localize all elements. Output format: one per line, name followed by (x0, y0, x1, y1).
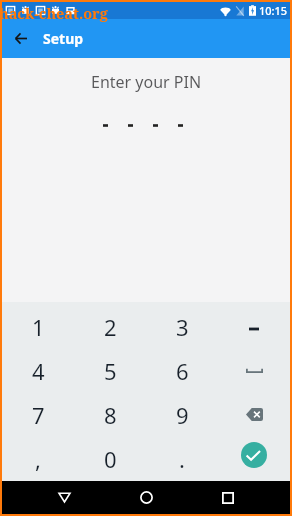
staticText: 3 (176, 312, 189, 342)
staticText: 4 (32, 356, 45, 386)
staticText: 0 (104, 444, 117, 474)
staticText: . (179, 444, 185, 474)
staticText: 5 (104, 356, 117, 386)
button[interactable]: 1 (2, 305, 74, 349)
button[interactable]: 5 (74, 349, 146, 393)
staticText: 7 (32, 400, 45, 430)
button[interactable]: 6 (146, 349, 218, 393)
button[interactable]: 8 (74, 393, 146, 437)
button[interactable]: 3 (146, 305, 218, 349)
button[interactable]: 9 (146, 393, 218, 437)
staticText: 10:15 (259, 3, 288, 18)
staticText: 9 (176, 400, 189, 430)
button[interactable]: Recent apps (208, 481, 248, 514)
button[interactable]: . (146, 437, 218, 481)
button[interactable]: , (2, 437, 74, 481)
button[interactable]: Home (126, 481, 166, 514)
staticText: 1 (32, 312, 45, 342)
button[interactable]: 0 (74, 437, 146, 481)
button[interactable]: 4 (2, 349, 74, 393)
staticText: 8 (104, 400, 117, 430)
staticText: 2 (104, 312, 117, 342)
button[interactable]: Backspace (218, 393, 290, 437)
button[interactable]: 7 (2, 393, 74, 437)
button[interactable]: Space (218, 349, 290, 393)
staticText: , (35, 444, 41, 474)
button[interactable]: Dash (218, 305, 290, 349)
staticText: 6 (176, 356, 189, 386)
staticText: hack-cheat.org (0, 3, 108, 23)
button[interactable]: 2 (74, 305, 146, 349)
staticText: Enter your PIN (91, 71, 202, 93)
staticText: Setup (43, 29, 84, 48)
button[interactable]: Confirm (218, 437, 290, 481)
button[interactable]: Navigate up (2, 19, 40, 58)
button[interactable]: Back (44, 481, 84, 514)
